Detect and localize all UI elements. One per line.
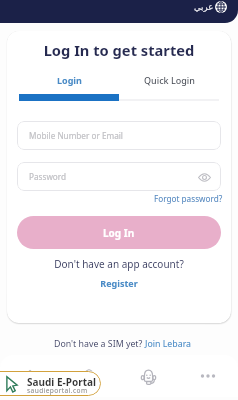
- button[interactable]: Login: [19, 73, 119, 87]
- button[interactable]: Show password: [196, 169, 212, 185]
- staticText: Login: [57, 74, 82, 86]
- staticText: Quick Login: [144, 74, 195, 86]
- button[interactable]: Register: [7, 277, 231, 289]
- button[interactable]: More: [178, 355, 238, 397]
- button[interactable]: Mobile Number or Email: [17, 121, 221, 150]
- staticText: Don't have a SIM yet?: [54, 338, 145, 350]
- button[interactable]: Change language: [194, 1, 227, 13]
- button[interactable]: Home: [0, 355, 59, 397]
- button[interactable]: Join Lebara: [145, 338, 192, 350]
- staticText: Log In to get started: [7, 40, 231, 60]
- staticText: Saudi E-Portal: [27, 375, 96, 389]
- staticText: Don't have an app account?: [7, 257, 231, 271]
- button[interactable]: Shop: [59, 355, 118, 397]
- staticText: Password: [29, 171, 67, 182]
- staticText: saudieportal.com: [27, 386, 88, 395]
- staticText: Log In: [103, 226, 135, 240]
- button[interactable]: Support: [118, 355, 178, 397]
- staticText: عربي: [194, 2, 214, 12]
- button[interactable]: Forgot password?: [154, 193, 223, 204]
- button[interactable]: Password: [17, 162, 221, 191]
- button[interactable]: Quick Login: [119, 73, 219, 87]
- button[interactable]: Log In: [17, 216, 221, 249]
- staticText: Mobile Number or Email: [29, 130, 123, 141]
